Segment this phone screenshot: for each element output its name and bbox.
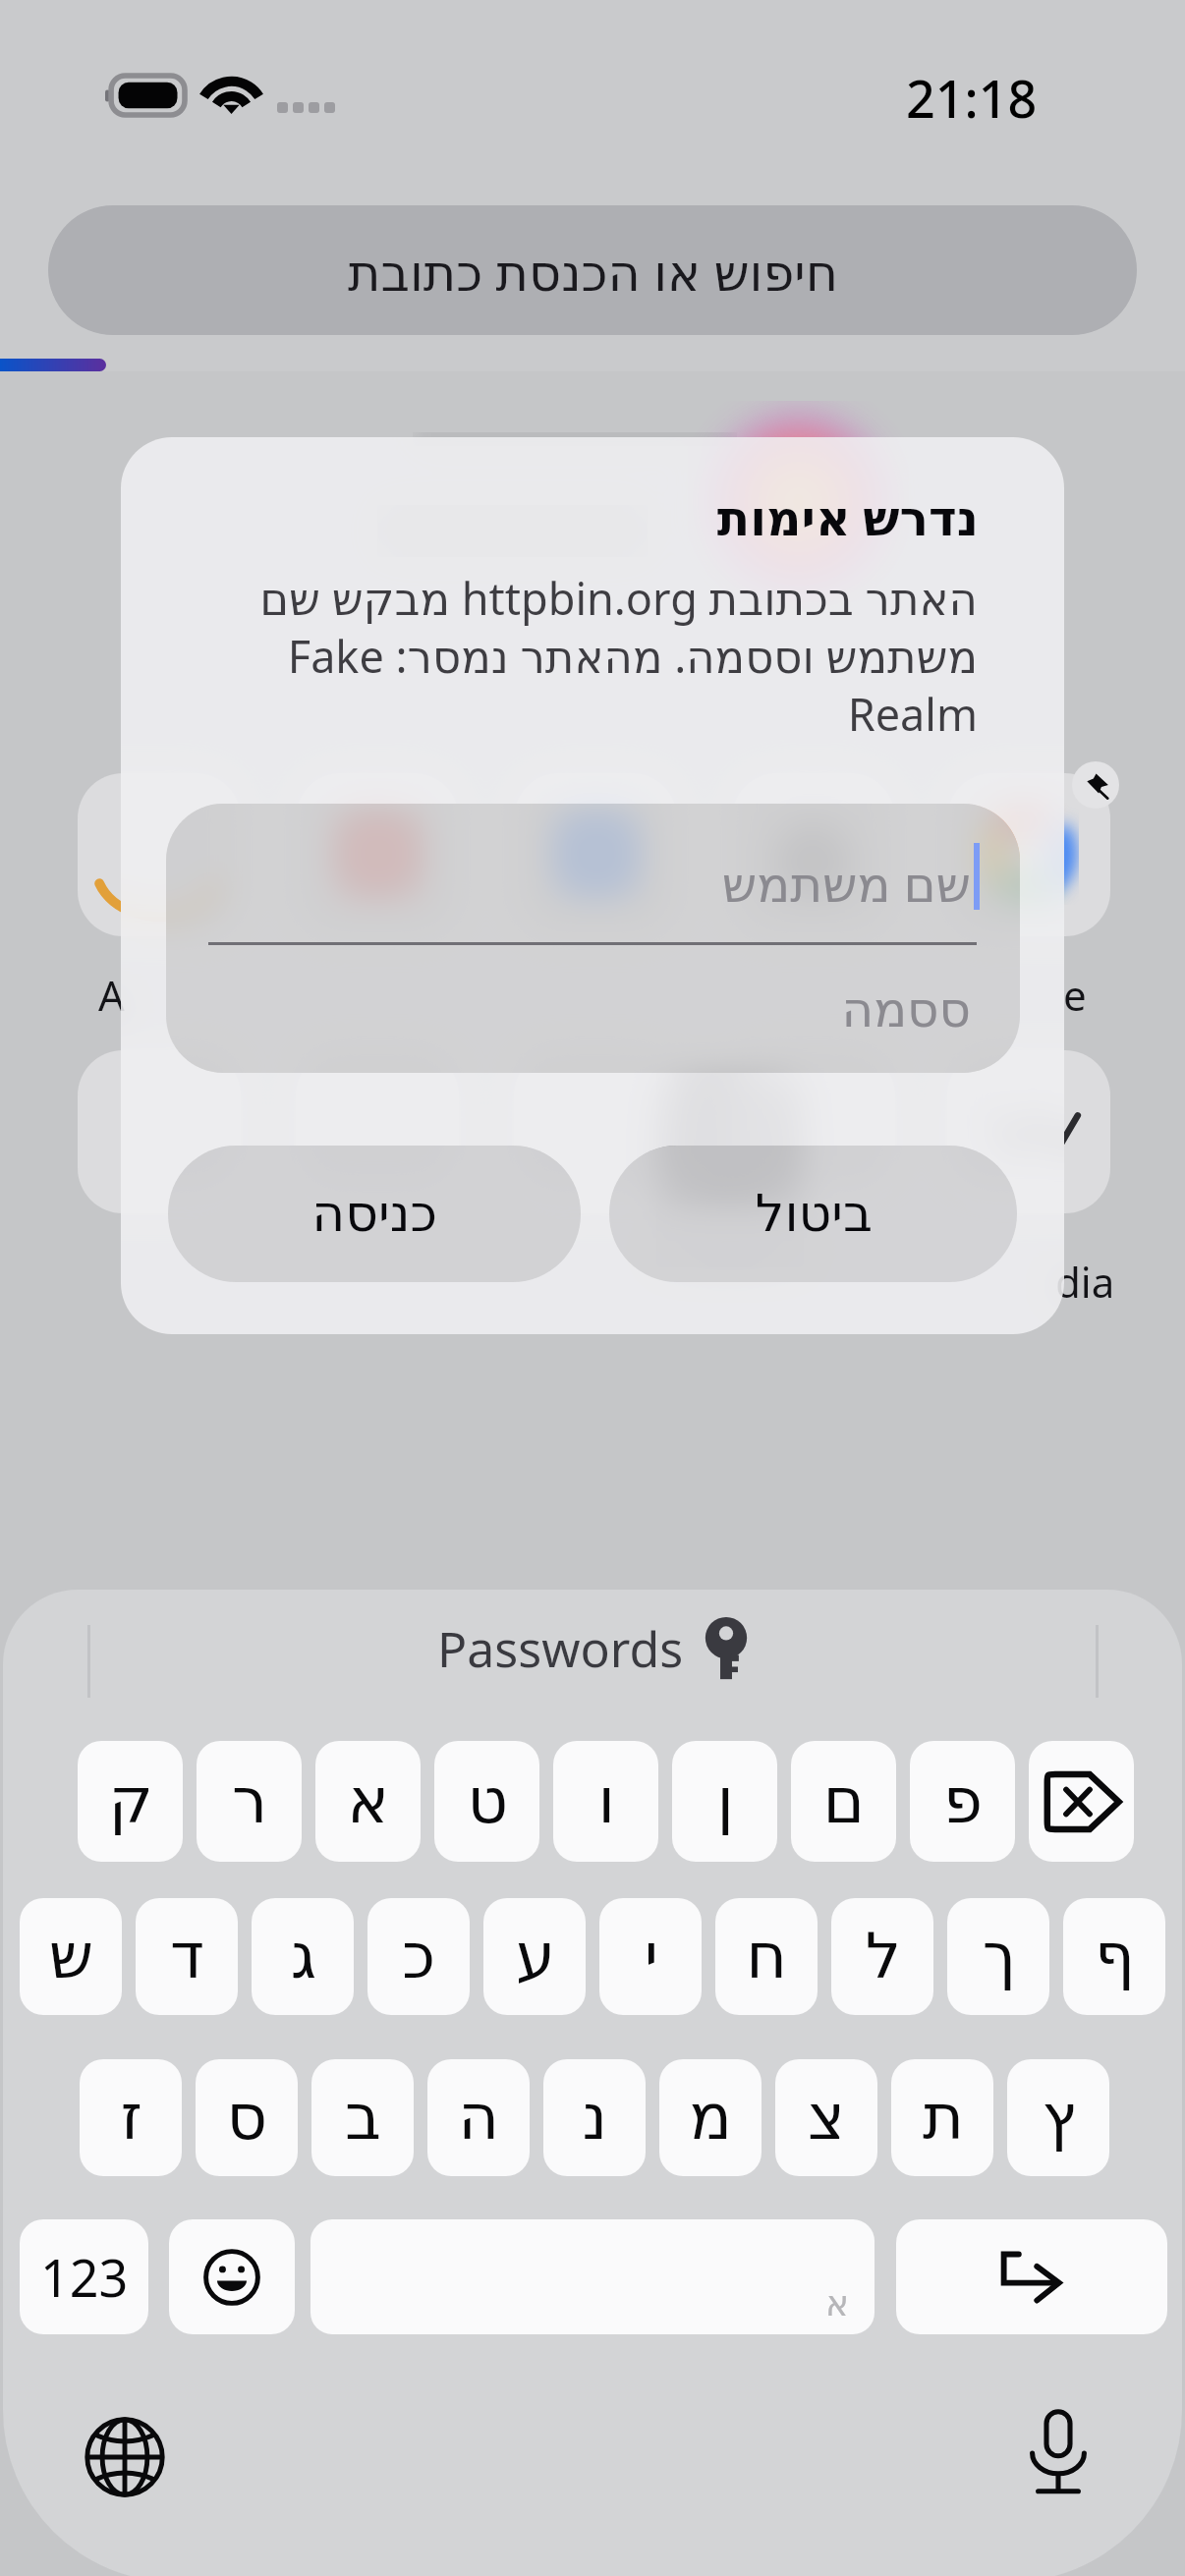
button[interactable]: Backspace [1029, 1741, 1134, 1862]
button[interactable]: Voice input [1004, 2400, 1112, 2508]
staticText: ססמה [166, 981, 971, 1038]
button[interactable]: ת [891, 2059, 993, 2176]
staticText: כ [402, 1920, 435, 1993]
staticText: dia [1055, 1254, 1115, 1310]
button[interactable]: ע [483, 1898, 586, 2015]
staticText: ו [597, 1764, 615, 1838]
staticText: שם משתמש [166, 850, 971, 917]
staticText: ם [822, 1764, 865, 1838]
button[interactable]: ו [553, 1741, 658, 1862]
button[interactable]: צ [775, 2059, 877, 2176]
staticText: ג [290, 1920, 316, 1993]
button[interactable]: שם משתמש [166, 804, 1020, 943]
staticText: ש [48, 1920, 93, 1993]
staticText: פ [943, 1764, 983, 1838]
button[interactable]: ג [252, 1898, 354, 2015]
staticText: צ [808, 2081, 845, 2155]
button[interactable]: ף [1063, 1898, 1165, 2015]
staticText: ה [458, 2081, 499, 2155]
staticText: 123 [40, 2242, 129, 2312]
staticText: A [98, 967, 125, 1023]
staticText: e [1063, 967, 1087, 1023]
button[interactable]: Space [310, 2219, 875, 2334]
button[interactable]: ב [311, 2059, 414, 2176]
staticText: האתר בכתובת httpbin.org מבקש שם משתמש וס… [199, 568, 978, 744]
button[interactable]: נ [543, 2059, 646, 2176]
staticText: נדרש אימות [121, 484, 979, 550]
button[interactable]: ט [434, 1741, 539, 1862]
staticText: ד [170, 1920, 204, 1993]
button[interactable]: A [168, 1146, 581, 1282]
button[interactable]: 123 [20, 2219, 148, 2334]
staticText: ת [922, 2081, 964, 2155]
button[interactable]: ה [427, 2059, 530, 2176]
button[interactable]: א [315, 1741, 421, 1862]
staticText: ר [231, 1764, 267, 1838]
button[interactable]: י [599, 1898, 702, 2015]
button[interactable]: ססמה [166, 945, 1020, 1073]
button[interactable]: Emoji [169, 2219, 295, 2334]
staticText: ך [982, 1920, 1016, 1993]
staticText: א [347, 1764, 389, 1838]
button[interactable]: ץ [1007, 2059, 1109, 2176]
button[interactable]: ז [80, 2059, 182, 2176]
staticText: נ [582, 2081, 607, 2155]
button[interactable]: ך [947, 1898, 1049, 2015]
button[interactable]: מ [659, 2059, 762, 2176]
button[interactable]: Change keyboard language [71, 2403, 179, 2511]
button[interactable]: ר [197, 1741, 302, 1862]
staticText: ן [716, 1764, 734, 1838]
staticText: ל [865, 1920, 901, 1993]
staticText: ס [226, 2081, 267, 2155]
button[interactable]: ס [196, 2059, 298, 2176]
button[interactable]: ן [672, 1741, 777, 1862]
staticText: א [824, 2283, 849, 2324]
button[interactable]: ק [78, 1741, 183, 1862]
staticText: ביטול [755, 1184, 873, 1244]
staticText: A [121, 967, 125, 1023]
staticText: ץ [1042, 2081, 1076, 2155]
button[interactable]: פ [910, 1741, 1015, 1862]
button[interactable]: ם [791, 1741, 896, 1862]
staticText: ט [467, 1764, 508, 1838]
staticText: חיפוש או הכנסת כתובת [347, 237, 838, 305]
staticText: מ [689, 2081, 732, 2155]
staticText: 21:18 [906, 63, 1038, 133]
staticText: י [644, 1920, 658, 1993]
staticText: ז [120, 2081, 142, 2155]
button[interactable]: ל [831, 1898, 933, 2015]
button[interactable]: ש [20, 1898, 122, 2015]
staticText: dia [1055, 1254, 1064, 1310]
button[interactable]: ח [715, 1898, 818, 2015]
staticText: Passwords [437, 1615, 684, 1682]
button[interactable]: Enter [896, 2219, 1167, 2334]
button[interactable]: A [609, 1146, 1017, 1282]
staticText: ף [1095, 1920, 1135, 1993]
staticText: ע [515, 1920, 555, 1993]
button[interactable]: חיפוש או הכנסת כתובת [48, 205, 1137, 335]
staticText: ק [108, 1764, 153, 1838]
staticText: ב [345, 2081, 381, 2155]
button[interactable]: ד [136, 1898, 238, 2015]
button[interactable]: כ [367, 1898, 470, 2015]
staticText: כניסה [311, 1184, 437, 1244]
staticText: ח [746, 1920, 787, 1993]
